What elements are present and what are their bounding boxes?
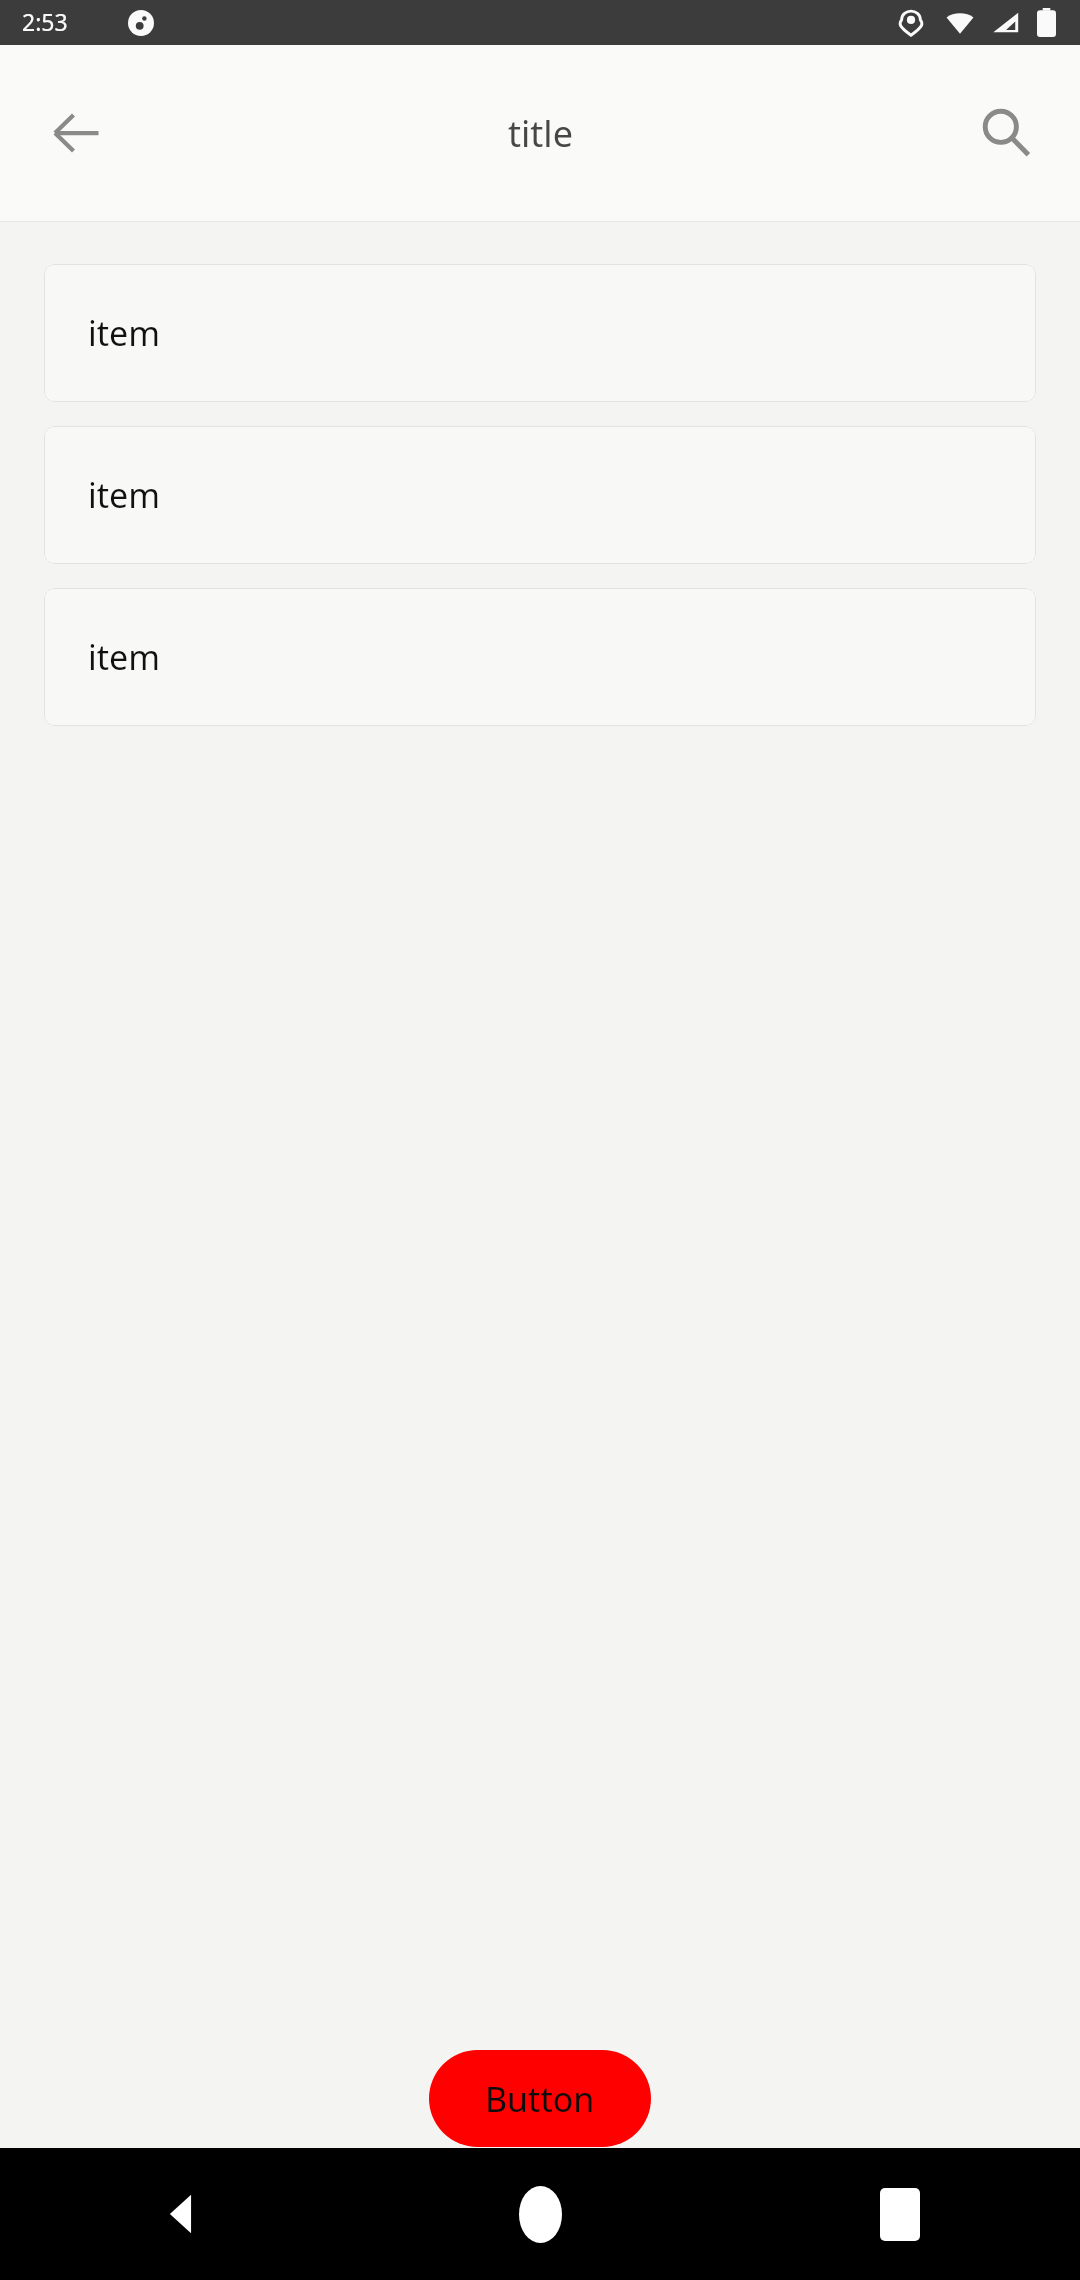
staticText: 2:53: [22, 6, 68, 37]
staticText: item: [88, 472, 161, 518]
staticText: item: [88, 310, 161, 356]
button[interactable]: Search: [960, 87, 1052, 179]
button[interactable]: Back: [0, 2148, 360, 2280]
button[interactable]: Button: [429, 2050, 651, 2147]
button[interactable]: item: [44, 426, 1036, 564]
button[interactable]: Home: [360, 2148, 720, 2280]
staticText: item: [88, 634, 161, 680]
button[interactable]: item: [44, 264, 1036, 402]
button[interactable]: item: [44, 588, 1036, 726]
staticText: Button: [485, 2076, 595, 2122]
staticText: title: [508, 109, 573, 158]
button[interactable]: Back: [30, 87, 122, 179]
button[interactable]: Recent apps: [720, 2148, 1080, 2280]
